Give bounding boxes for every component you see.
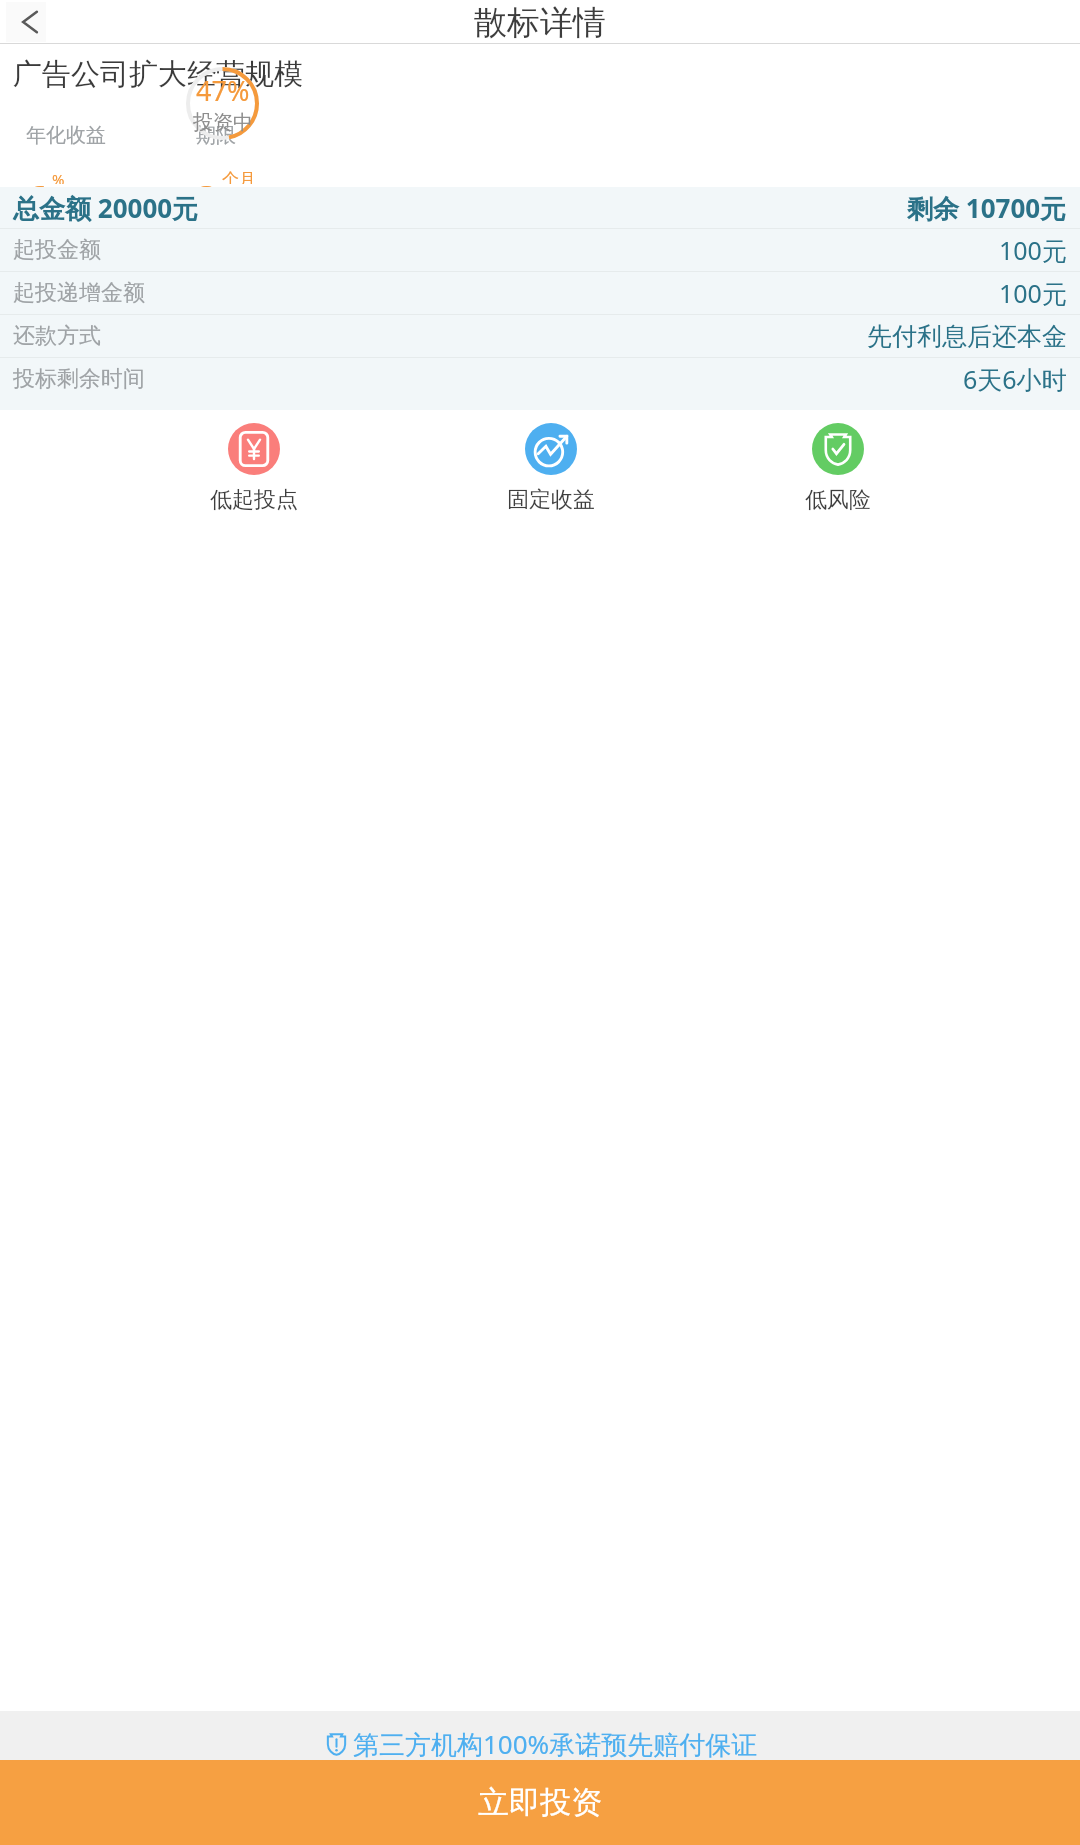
button[interactable]: 起投金额 bbox=[0, 229, 1080, 271]
staticText: 6 bbox=[26, 172, 48, 187]
staticText: 广告公司扩大经营规模 bbox=[13, 56, 303, 93]
button[interactable]: 立即投资 bbox=[0, 1760, 1080, 1845]
button[interactable]: 低风险 bbox=[805, 423, 871, 514]
button[interactable]: 起投递增金额 bbox=[0, 272, 1080, 314]
staticText: 固定收益 bbox=[507, 486, 595, 514]
staticText: 6天6小时 bbox=[963, 362, 1067, 396]
staticText: 立即投资 bbox=[478, 1783, 602, 1822]
staticText: 剩余 10700元 bbox=[907, 190, 1067, 226]
staticText: 散标详情 bbox=[474, 2, 606, 44]
staticText: 低风险 bbox=[805, 486, 871, 514]
staticText: 个月 bbox=[222, 169, 256, 184]
staticText: 总金额 20000元 bbox=[13, 190, 199, 226]
button[interactable]: 还款方式 bbox=[0, 315, 1080, 357]
staticText: 3 bbox=[196, 172, 218, 187]
staticText: 期限 bbox=[196, 123, 236, 148]
staticText: 起投金额 bbox=[13, 236, 101, 264]
staticText: 投资中 bbox=[193, 110, 253, 135]
staticText: 还款方式 bbox=[13, 322, 101, 350]
staticText: 投标剩余时间 bbox=[13, 365, 145, 393]
button[interactable]: 总金额 20000元 bbox=[0, 187, 1080, 228]
staticText: 第三方机构100%承诺预先赔付保证 bbox=[353, 1726, 758, 1762]
staticText: 47% bbox=[196, 72, 250, 109]
button[interactable]: 投标剩余时间 bbox=[0, 358, 1080, 400]
staticText: 低起投点 bbox=[210, 486, 298, 514]
staticText: 100元 bbox=[999, 233, 1067, 267]
button[interactable]: 低起投点 bbox=[210, 423, 298, 514]
staticText: 起投递增金额 bbox=[13, 279, 145, 307]
staticText: 年化收益 bbox=[26, 123, 106, 148]
staticText: 先付利息后还本金 bbox=[867, 321, 1067, 352]
button[interactable]: 固定收益 bbox=[507, 423, 595, 514]
button[interactable]: Back bbox=[6, 2, 46, 42]
staticText: 100元 bbox=[999, 276, 1067, 310]
staticText: % bbox=[52, 169, 65, 184]
